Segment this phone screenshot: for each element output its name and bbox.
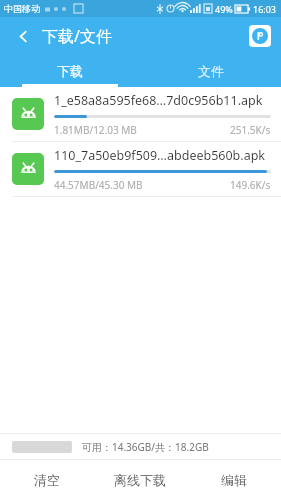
button[interactable]: 下载 [0,55,140,87]
staticText: 1.81MB/12.03 MB [54,123,137,137]
staticText: 下载/文件 [42,25,112,47]
staticText: 可用：14.36GB/共：18.2GB [82,440,209,454]
button[interactable]: 离线下载 [93,460,187,500]
staticText: 离线下载 [114,472,166,488]
staticText: 下载 [57,63,83,79]
staticText: 1_e58a8a595fe68…7d0c956b11.apk [54,92,263,109]
staticText: 16:03 [253,3,277,15]
button[interactable]: Back [10,23,36,49]
staticText: 251.5K/s [230,123,271,137]
staticText: 中国移动 [4,3,40,14]
staticText: 清空 [34,472,60,488]
button[interactable]: 110_7a50eb9f509…abdeeb560b.apk [0,142,281,196]
staticText: 149.6K/s [230,178,271,192]
staticText: 49% [215,3,233,15]
staticText: 44.57MB/45.30 MB [54,178,143,192]
staticText: 110_7a50eb9f509…abdeeb560b.apk [54,147,266,164]
button[interactable]: 编辑 [187,460,281,500]
staticText: 文件 [198,63,224,79]
button[interactable]: 清空 [0,460,93,500]
staticText: 编辑 [221,472,247,488]
button[interactable]: 文件 [140,55,281,87]
button[interactable]: 1_e58a8a595fe68…7d0c956b11.apk [0,87,281,141]
button[interactable]: Pan app [249,25,271,47]
